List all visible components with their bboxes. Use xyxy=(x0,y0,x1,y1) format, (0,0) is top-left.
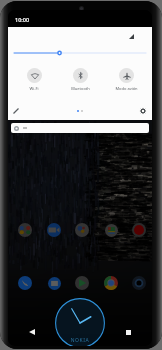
button[interactable]: Bluetooth xyxy=(60,68,100,91)
button[interactable]: Phone xyxy=(16,274,34,292)
button[interactable]: Modo avión xyxy=(106,68,146,91)
button[interactable]: Photos xyxy=(73,221,91,239)
button[interactable]: Settings xyxy=(137,105,149,117)
staticText: Modo avión xyxy=(115,86,138,91)
staticText: Wi-Fi xyxy=(29,86,39,91)
button[interactable]: Wi-Fi xyxy=(14,68,54,91)
button[interactable]: Duo xyxy=(45,221,63,239)
button[interactable]: Messages xyxy=(45,274,63,292)
button[interactable]: YouTube xyxy=(130,221,148,239)
button[interactable]: Play Store xyxy=(73,274,91,292)
staticText: Bluetooth xyxy=(71,86,90,91)
button[interactable]: Edit xyxy=(10,105,22,117)
button[interactable]: Clock xyxy=(55,298,105,346)
button[interactable]: Google xyxy=(16,221,34,239)
button[interactable] xyxy=(11,123,149,133)
staticText: 10:00 xyxy=(15,16,30,23)
button[interactable]: Back xyxy=(8,321,56,343)
button[interactable]: Maps xyxy=(102,221,120,239)
button[interactable]: Recents xyxy=(104,321,152,343)
button[interactable]: Chrome xyxy=(102,274,120,292)
staticText: NOKIA xyxy=(55,337,105,344)
button[interactable]: Home xyxy=(56,321,104,343)
button[interactable]: Camera xyxy=(130,274,148,292)
